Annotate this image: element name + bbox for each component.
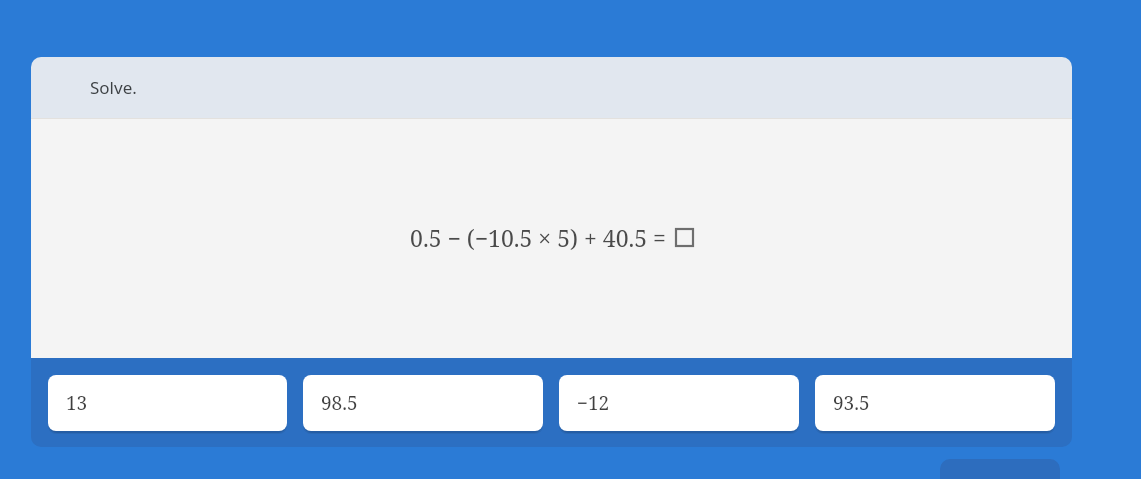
staticText: 98.5 [321, 390, 358, 416]
staticText: 93.5 [833, 390, 870, 416]
button[interactable]: 13 [48, 375, 287, 431]
button[interactable]: Check answer [940, 459, 1060, 479]
staticText: 13 [66, 390, 88, 416]
button[interactable]: 98.5 [303, 375, 543, 431]
button[interactable]: −12 [559, 375, 799, 431]
button[interactable]: 93.5 [815, 375, 1055, 431]
staticText: −12 [577, 390, 610, 416]
staticText: 0.5 − (−10.5 × 5) + 40.5 = [410, 222, 666, 253]
staticText: Solve. [90, 76, 137, 99]
